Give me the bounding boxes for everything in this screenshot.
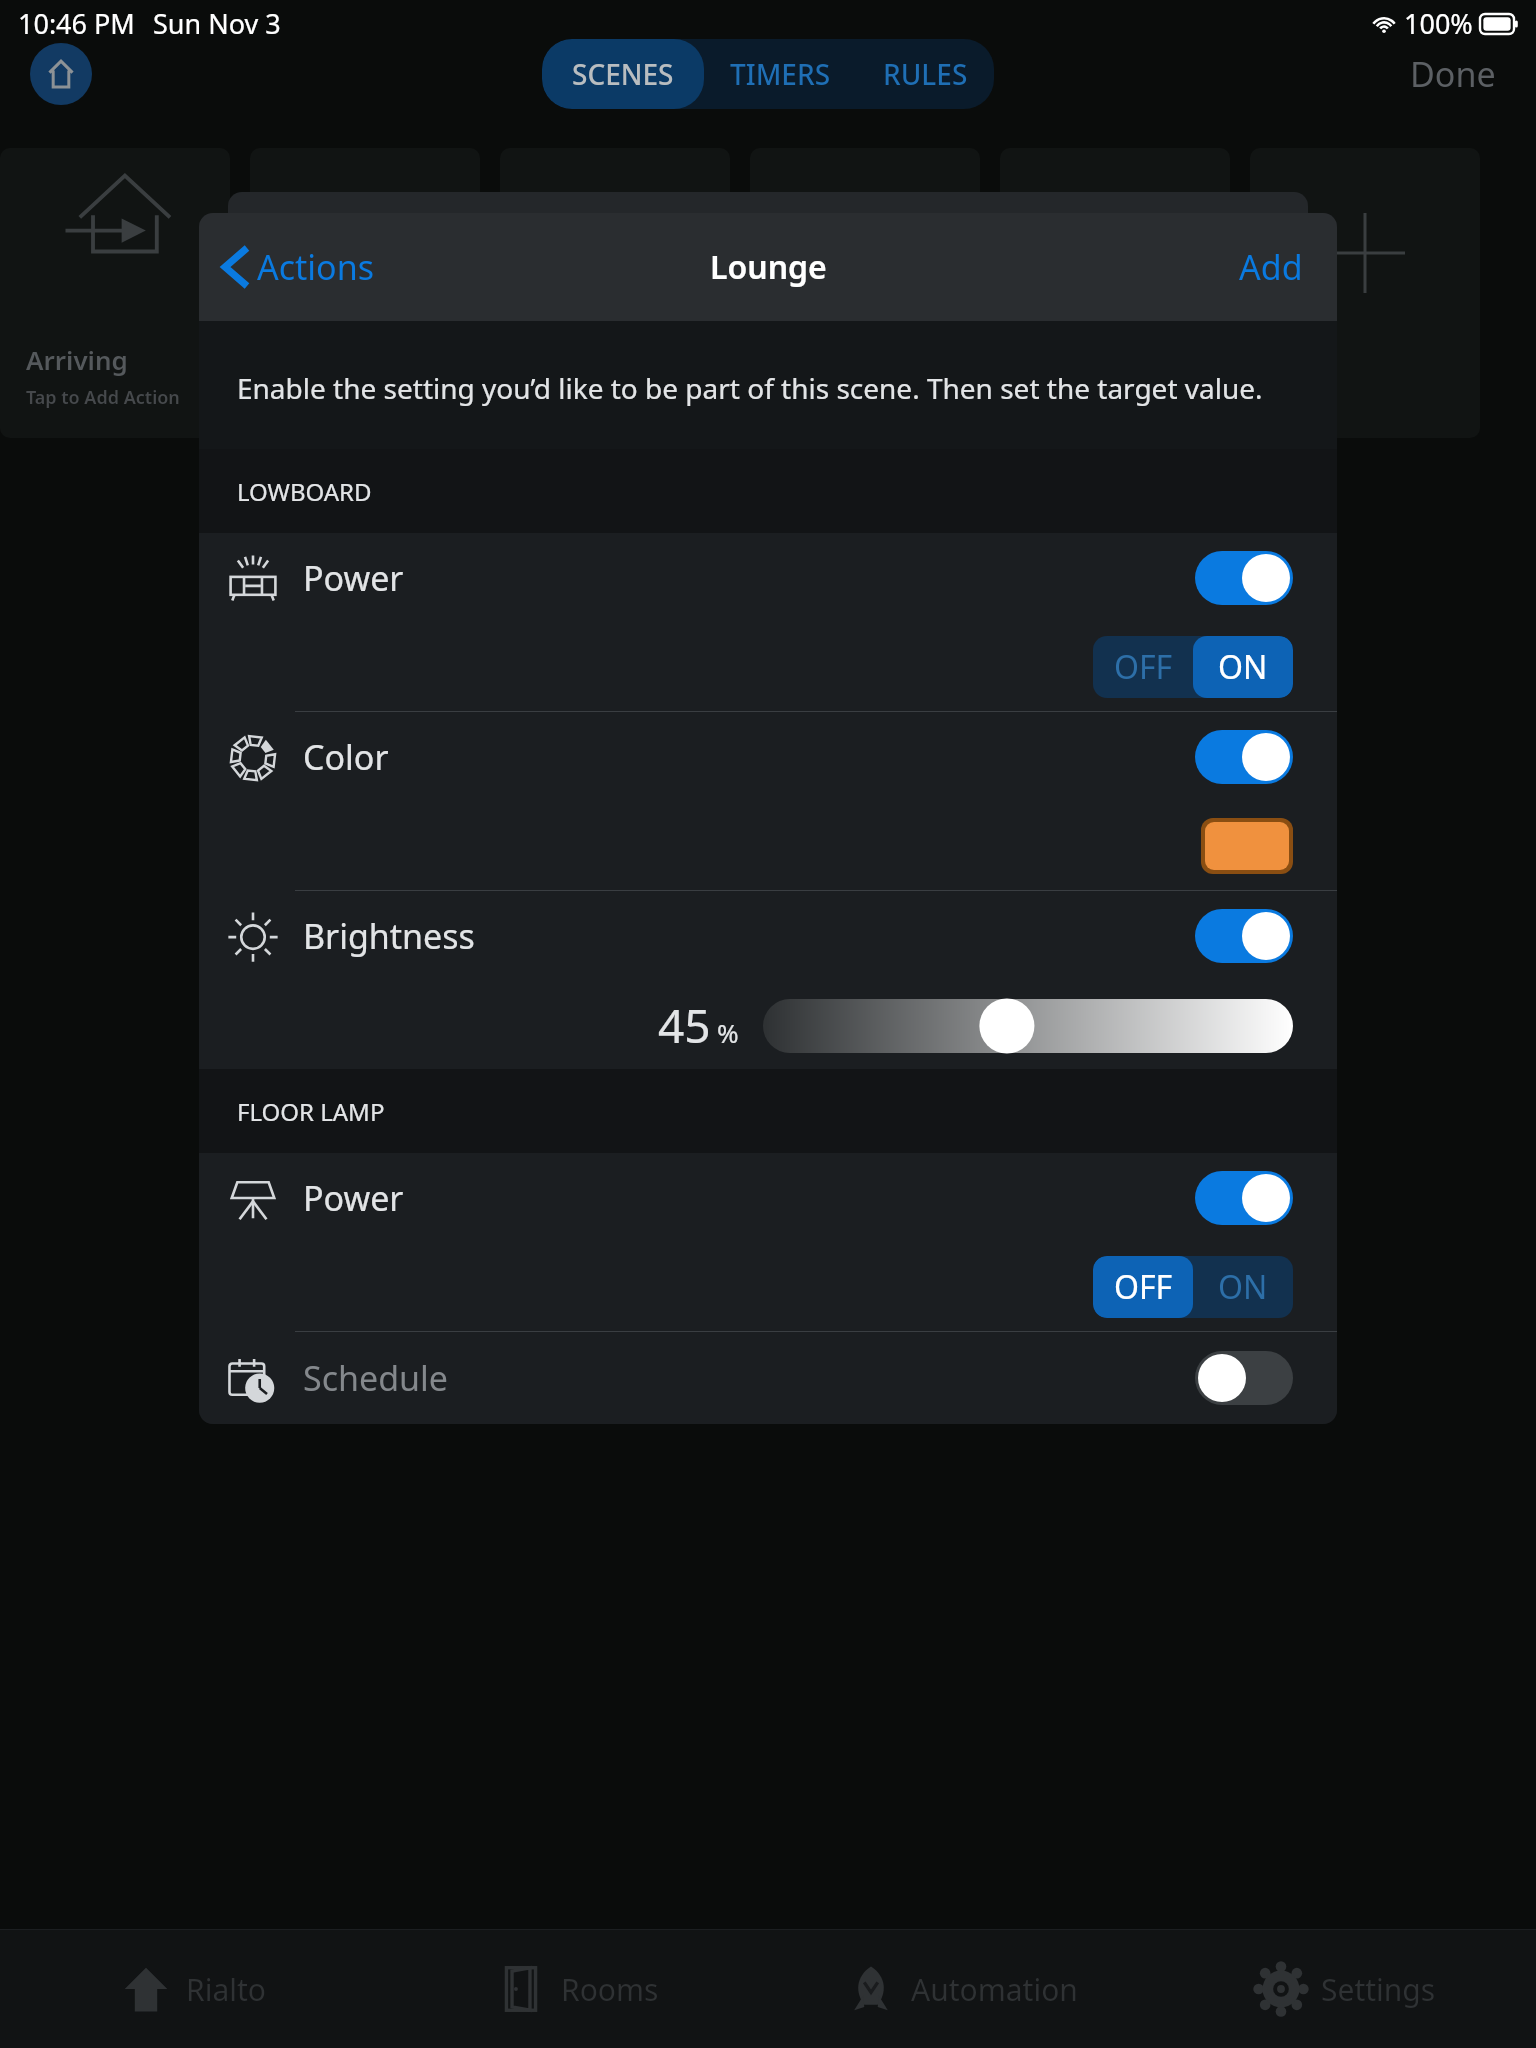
staticText: RULES [883, 55, 968, 93]
staticText: Lounge [710, 245, 827, 289]
staticText: TIMERS [730, 55, 831, 93]
button[interactable] [250, 148, 480, 438]
button[interactable]: ON [1193, 636, 1293, 698]
button[interactable]: Toggle on [1195, 551, 1293, 605]
staticText: Power [303, 1175, 1195, 1221]
button[interactable]: Toggle off [1195, 1351, 1293, 1405]
staticText: Actions [257, 244, 374, 290]
button[interactable]: Power [199, 1153, 1337, 1331]
staticText: LOWBOARD [237, 475, 372, 508]
button[interactable]: Rialto [0, 1930, 384, 2048]
staticText: Done [1410, 51, 1496, 97]
button[interactable]: Toggle on [1195, 909, 1293, 963]
button[interactable]: Toggle on [1195, 1171, 1293, 1225]
button[interactable] [500, 148, 730, 438]
button[interactable]: Toggle on [1195, 730, 1293, 784]
staticText: Enable the setting you’d like to be part… [237, 369, 1263, 407]
staticText: 100% [1404, 5, 1473, 42]
button[interactable]: ...ene [1000, 148, 1230, 438]
button[interactable]: ON [1193, 1256, 1293, 1318]
staticText: Arriving [26, 342, 128, 377]
staticText: Automation [911, 1969, 1078, 2010]
button[interactable]: Color [199, 712, 1337, 890]
staticText: SCENES [572, 55, 674, 93]
staticText: ON [1218, 1265, 1268, 1309]
button[interactable] [750, 148, 980, 438]
staticText: Tap to Add Action [1026, 385, 1180, 410]
button[interactable]: Rooms [384, 1930, 768, 2048]
button[interactable] [763, 999, 1293, 1053]
staticText: Tap to Add Action [26, 385, 180, 410]
button[interactable]: Home [30, 43, 92, 105]
staticText: Color [303, 734, 1195, 780]
staticText: Rooms [561, 1969, 659, 2010]
button[interactable]: Done [1370, 35, 1536, 113]
button[interactable]: SCENES [542, 39, 704, 109]
staticText: Settings [1321, 1969, 1436, 2010]
staticText: OFF [1114, 645, 1173, 689]
button[interactable]: Pick colour [1205, 822, 1289, 870]
staticText: 45 [658, 994, 711, 1057]
button[interactable]: TIMERS [704, 39, 857, 109]
staticText: 10:46 PM [18, 5, 135, 42]
button[interactable]: Brightness [199, 891, 1337, 1069]
staticText: ON [1218, 645, 1268, 689]
button[interactable]: OFF [1093, 1256, 1193, 1318]
staticText: Sun Nov 3 [153, 5, 281, 42]
staticText: Schedule [303, 1355, 1195, 1401]
staticText: Rialto [186, 1969, 266, 2010]
button[interactable]: Power [199, 533, 1337, 711]
button[interactable]: Schedule [225, 1332, 1293, 1424]
button[interactable]: OFF [1093, 636, 1193, 698]
button[interactable]: Add scene [1250, 148, 1480, 438]
button[interactable]: Automation [768, 1930, 1152, 2048]
button[interactable]: Arriving [0, 148, 230, 438]
button[interactable]: Actions [199, 234, 394, 300]
staticText: OFF [1114, 1265, 1173, 1309]
staticText: Brightness [303, 913, 1195, 959]
staticText: FLOOR LAMP [237, 1095, 385, 1128]
button[interactable]: Settings [1152, 1930, 1536, 2048]
staticText: Add [1239, 244, 1303, 290]
button[interactable]: RULES [857, 39, 994, 109]
staticText: % [717, 1015, 739, 1050]
button[interactable]: Add [1205, 232, 1337, 302]
staticText: Power [303, 555, 1195, 601]
